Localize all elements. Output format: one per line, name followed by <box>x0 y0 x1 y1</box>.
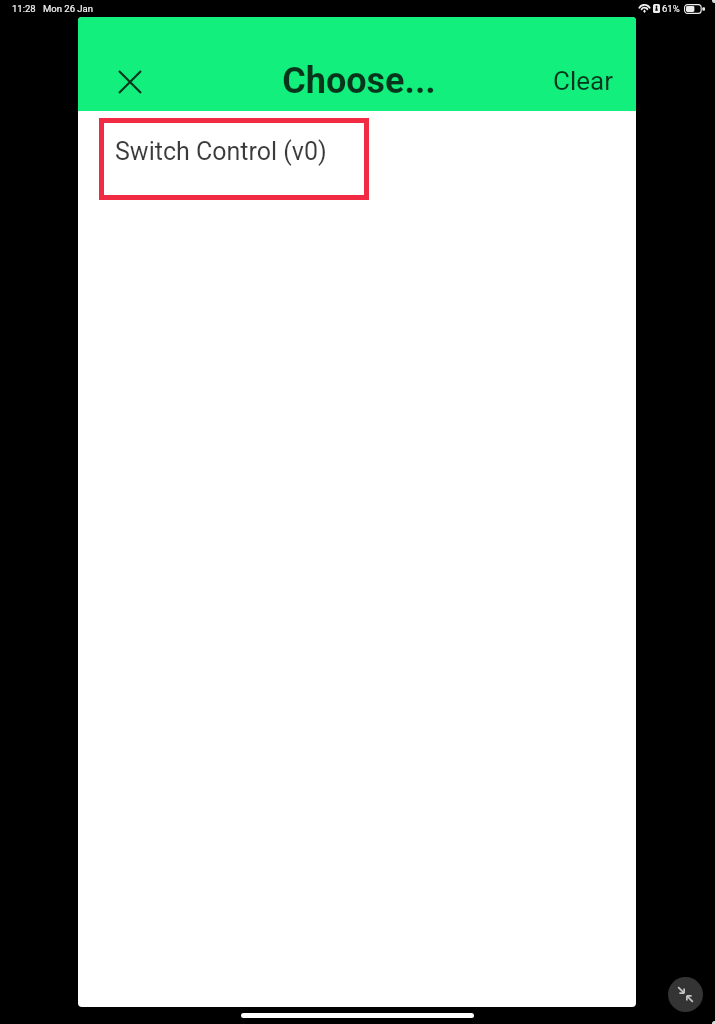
button[interactable]: Clear <box>541 60 625 102</box>
staticText: 11:28 <box>12 3 36 14</box>
staticText: Choose... <box>282 60 436 102</box>
staticText: Clear <box>553 66 613 96</box>
button[interactable]: Collapse <box>668 977 703 1012</box>
button[interactable]: Switch Control (v0) <box>99 118 369 200</box>
button[interactable]: Close <box>102 54 158 110</box>
staticText: Switch Control (v0) <box>115 137 327 166</box>
staticText: 61% <box>662 3 680 14</box>
staticText: Mon 26 Jan <box>43 3 94 14</box>
